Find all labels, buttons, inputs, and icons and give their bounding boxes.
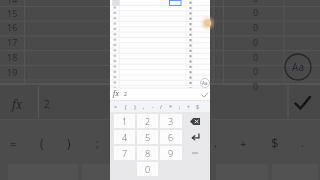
staticText: 0: [253, 80, 259, 92]
staticText: 0: [253, 36, 259, 48]
button[interactable]: 3: [160, 114, 182, 128]
staticText: fx: [12, 96, 23, 112]
button[interactable]: back: [184, 114, 206, 128]
staticText: 18: [7, 51, 18, 63]
button[interactable]: -: [148, 100, 157, 112]
staticText: /: [160, 103, 163, 110]
button[interactable]: 6: [160, 130, 182, 144]
staticText: 0: [253, 21, 259, 33]
staticText: =: [114, 103, 118, 110]
staticText: =: [10, 136, 17, 151]
staticText: 1: [122, 115, 128, 127]
staticText: 0: [253, 65, 259, 77]
staticText: 16: [7, 21, 18, 33]
button[interactable]: minus: [184, 146, 206, 160]
staticText: 5: [145, 131, 151, 143]
button[interactable]: ,: [139, 100, 148, 112]
staticText: +: [240, 136, 247, 151]
staticText: $: [196, 103, 200, 110]
button[interactable]: =: [111, 100, 121, 112]
button[interactable]: 4: [114, 130, 135, 144]
button[interactable]: *: [166, 100, 175, 112]
button[interactable]: 2: [137, 114, 158, 128]
staticText: 0: [253, 51, 259, 63]
staticText: (: [40, 135, 44, 151]
button[interactable]: 5: [137, 130, 158, 144]
button[interactable]: Accept: [199, 89, 210, 100]
staticText: ;: [96, 135, 99, 150]
button[interactable]: +: [184, 100, 193, 112]
button[interactable]: Accept: [288, 88, 318, 118]
staticText: 2: [124, 91, 127, 98]
staticText: ): [67, 135, 71, 151]
button[interactable]: 8: [137, 146, 158, 160]
staticText: 3: [168, 115, 174, 127]
staticText: 0: [253, 6, 259, 18]
staticText: 2: [44, 97, 50, 111]
button[interactable]: 7: [114, 146, 135, 160]
staticText: 7: [122, 147, 128, 159]
button[interactable]: Format text: [200, 78, 210, 88]
staticText: 0: [145, 163, 151, 175]
staticText: 19: [7, 66, 18, 78]
staticText: 4: [122, 131, 128, 143]
staticText: ): [134, 103, 136, 110]
staticText: 0: [253, 0, 259, 4]
staticText: +: [187, 103, 191, 110]
staticText: 15: [7, 7, 18, 19]
button[interactable]: Format text: [284, 53, 312, 81]
button[interactable]: enter: [184, 130, 206, 144]
staticText: (: [125, 103, 127, 110]
button[interactable]: 1: [114, 114, 135, 128]
staticText: ,: [214, 135, 217, 150]
staticText: 17: [7, 36, 18, 48]
staticText: 2: [145, 115, 151, 127]
staticText: ;: [179, 103, 181, 110]
staticText: $: [271, 134, 279, 152]
button[interactable]: $: [193, 100, 202, 112]
staticText: 6: [168, 131, 174, 143]
button[interactable]: 9: [160, 146, 182, 160]
staticText: fx: [113, 89, 120, 99]
staticText: .: [301, 135, 304, 150]
button[interactable]: ;: [175, 100, 184, 112]
staticText: ,: [143, 103, 145, 110]
staticText: Aa: [292, 60, 304, 74]
button[interactable]: (: [121, 100, 130, 112]
button[interactable]: ): [130, 100, 139, 112]
button[interactable]: /: [157, 100, 166, 112]
button[interactable]: 0: [137, 162, 158, 176]
staticText: *: [169, 103, 173, 110]
staticText: 9: [168, 147, 174, 159]
staticText: 8: [145, 147, 151, 159]
staticText: Aa: [202, 80, 208, 86]
staticText: -: [152, 103, 154, 110]
staticText: 14: [7, 0, 18, 5]
